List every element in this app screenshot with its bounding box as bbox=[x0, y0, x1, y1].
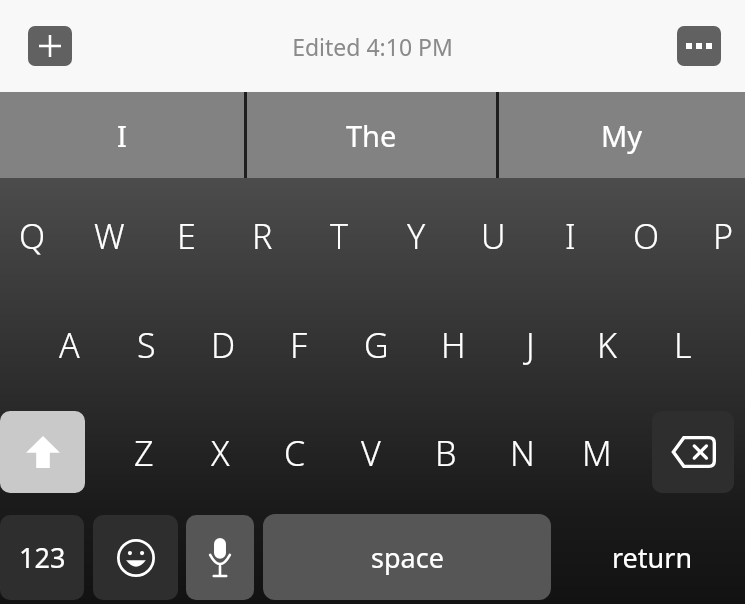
button[interactable]: Voice input bbox=[186, 515, 254, 600]
button[interactable]: W bbox=[74, 193, 144, 279]
button[interactable]: H bbox=[418, 302, 488, 388]
button[interactable]: More options bbox=[677, 26, 721, 66]
button[interactable]: O bbox=[611, 193, 681, 279]
button[interactable]: G bbox=[341, 302, 411, 388]
staticText: O bbox=[633, 213, 660, 259]
staticText: J bbox=[526, 322, 535, 368]
staticText: T bbox=[330, 213, 349, 259]
staticText: W bbox=[94, 213, 125, 259]
button[interactable]: R bbox=[227, 193, 297, 279]
staticText: N bbox=[510, 430, 535, 476]
staticText: B bbox=[435, 430, 457, 476]
staticText: 123 bbox=[19, 539, 66, 576]
staticText: V bbox=[361, 430, 381, 476]
button[interactable]: A bbox=[34, 302, 104, 388]
button[interactable]: space bbox=[263, 514, 551, 600]
staticText: My bbox=[601, 116, 643, 155]
staticText: I bbox=[565, 213, 576, 259]
button[interactable]: Emoji bbox=[93, 515, 178, 600]
button[interactable]: L bbox=[648, 302, 718, 388]
button[interactable]: Backspace bbox=[652, 411, 734, 493]
button[interactable]: U bbox=[458, 193, 528, 279]
button[interactable]: B bbox=[411, 410, 481, 496]
staticText: S bbox=[137, 322, 156, 368]
staticText: Y bbox=[407, 213, 426, 259]
staticText: L bbox=[674, 322, 692, 368]
button[interactable]: Y bbox=[381, 193, 451, 279]
button[interactable]: T bbox=[304, 193, 374, 279]
button[interactable]: Add bbox=[28, 26, 72, 66]
button[interactable]: M bbox=[562, 410, 632, 496]
button[interactable]: F bbox=[264, 302, 334, 388]
button[interactable]: K bbox=[572, 302, 642, 388]
button[interactable]: The bbox=[247, 92, 496, 178]
staticText: K bbox=[597, 322, 617, 368]
staticText: Q bbox=[19, 213, 46, 259]
staticText: F bbox=[290, 322, 308, 368]
staticText: R bbox=[252, 213, 273, 259]
button[interactable]: C bbox=[260, 410, 330, 496]
button[interactable]: return bbox=[560, 514, 745, 600]
staticText: C bbox=[284, 430, 306, 476]
button[interactable]: E bbox=[151, 193, 221, 279]
staticText: E bbox=[177, 213, 196, 259]
staticText: Edited 4:10 PM bbox=[292, 31, 453, 62]
staticText: P bbox=[713, 213, 734, 259]
button[interactable]: I bbox=[0, 92, 244, 178]
staticText: return bbox=[612, 539, 693, 576]
button[interactable]: N bbox=[487, 410, 557, 496]
staticText: H bbox=[441, 322, 466, 368]
button[interactable]: V bbox=[336, 410, 406, 496]
button[interactable]: J bbox=[495, 302, 565, 388]
button[interactable]: My bbox=[499, 92, 745, 178]
staticText: A bbox=[59, 322, 80, 368]
staticText: I bbox=[117, 116, 127, 155]
button[interactable]: D bbox=[188, 302, 258, 388]
button[interactable]: S bbox=[111, 302, 181, 388]
staticText: X bbox=[211, 430, 230, 476]
staticText: U bbox=[481, 213, 506, 259]
button[interactable]: I bbox=[535, 193, 605, 279]
button[interactable]: X bbox=[185, 410, 255, 496]
staticText: G bbox=[364, 322, 389, 368]
button[interactable]: Shift bbox=[0, 411, 85, 493]
button[interactable]: Z bbox=[109, 410, 179, 496]
button[interactable]: P bbox=[688, 193, 745, 279]
staticText: Z bbox=[134, 430, 154, 476]
button[interactable]: 123 bbox=[0, 515, 84, 600]
staticText: space bbox=[371, 539, 444, 576]
staticText: M bbox=[582, 430, 612, 476]
staticText: D bbox=[211, 322, 236, 368]
button[interactable]: Q bbox=[0, 193, 67, 279]
staticText: The bbox=[346, 116, 397, 155]
